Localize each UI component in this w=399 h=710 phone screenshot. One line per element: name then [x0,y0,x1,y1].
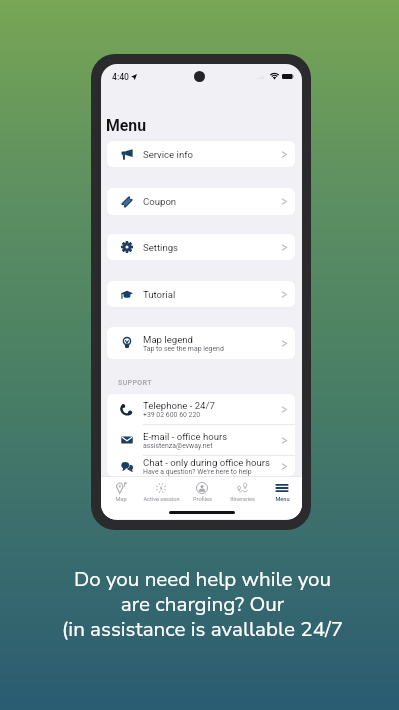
button[interactable]: Active session [141,477,181,507]
staticText: Menu [106,116,147,135]
button[interactable]: Menu [262,477,302,507]
staticText: Tutorial [143,289,176,300]
button[interactable]: Settings [107,234,295,260]
button[interactable]: Map legend [107,327,295,359]
button[interactable]: Map [101,477,141,507]
staticText: +39 02 600 60 220 [143,411,201,419]
button[interactable]: Itineraries [222,477,262,507]
staticText: Tap to see the map legend [143,345,224,353]
button[interactable]: Tutorial [107,281,295,307]
staticText: assistenza@evway.net [143,442,213,450]
staticText: Have a question? We're here to help [143,468,252,476]
staticText: Profiles [193,496,212,503]
button[interactable]: Profiles [182,477,222,507]
button[interactable]: Service info [107,141,295,167]
staticText: Do you need help while you are charging?… [3,565,399,643]
staticText: Coupon [143,196,177,207]
staticText: SUPPORT [118,379,152,387]
staticText: Settings [143,242,179,253]
staticText: Service info [143,149,194,160]
staticText: Chat - only during office hours [143,457,271,468]
staticText: Telephone - 24/7 [143,400,215,411]
staticText: Active session [143,496,180,503]
staticText: E-mail - office hours [143,431,228,442]
button[interactable]: Telephone - 24/7 [107,394,295,424]
staticText: Menu [275,496,290,503]
button[interactable]: Chat - only during office hours [107,456,295,476]
staticText: Itineraries [230,496,255,503]
staticText: Map [115,496,127,503]
staticText: 4:40 [112,72,129,82]
staticText: Map legend [143,334,193,345]
button[interactable]: E-mail - office hours [107,425,295,455]
button[interactable]: Coupon [107,188,295,215]
